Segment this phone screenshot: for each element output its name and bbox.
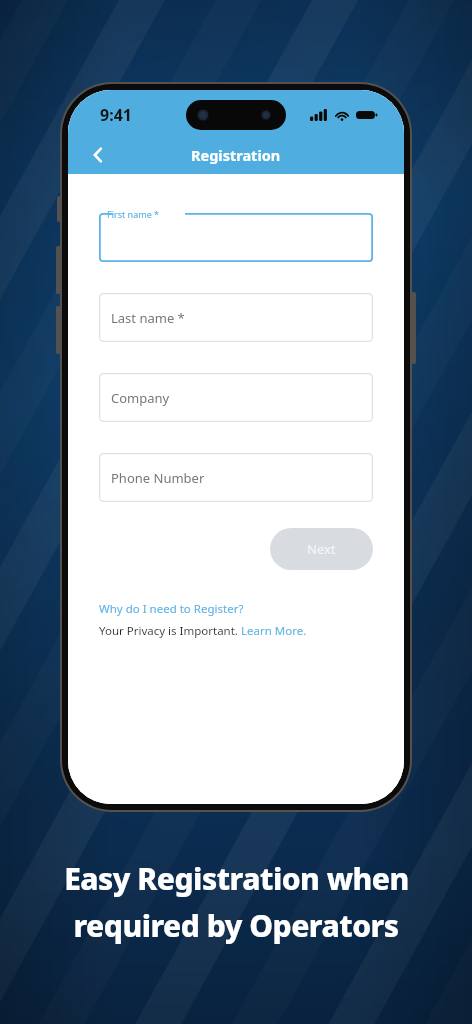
staticText: Learn More. — [241, 623, 307, 639]
staticText: Why do I need to Register? — [99, 601, 244, 617]
button[interactable]: Next — [270, 528, 373, 570]
button[interactable]: Last name * — [99, 293, 373, 342]
staticText: Phone Number — [111, 469, 205, 487]
button[interactable]: First name * — [99, 213, 373, 262]
staticText: Next — [307, 540, 336, 558]
button[interactable]: Company — [99, 373, 373, 422]
button[interactable]: Learn More. — [241, 623, 307, 639]
staticText: First name * — [107, 208, 160, 220]
staticText: Company — [111, 389, 170, 407]
staticText: Easy Registration when — [64, 858, 409, 899]
staticText: Last name * — [111, 309, 185, 327]
staticText: Your Privacy is Important. — [99, 623, 241, 639]
button[interactable]: Phone Number — [99, 453, 373, 502]
button[interactable]: Why do I need to Register? — [99, 601, 244, 617]
staticText: Registration — [191, 145, 281, 165]
staticText: 9:41 — [100, 104, 132, 126]
staticText: required by Operators — [73, 905, 399, 946]
button[interactable]: Back — [80, 137, 116, 173]
